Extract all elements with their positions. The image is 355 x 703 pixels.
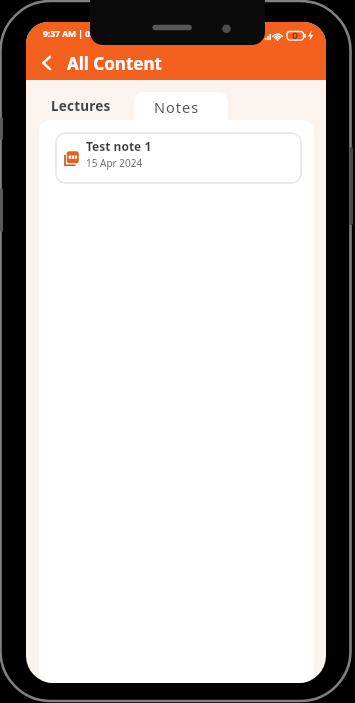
button[interactable]: Lectures: [51, 92, 111, 120]
staticText: 9:37 AM | 0.00KB/s: [43, 28, 122, 40]
staticText: Test note 1: [86, 138, 152, 154]
staticText: All Content: [67, 52, 162, 75]
staticText: Lectures: [51, 97, 111, 115]
button[interactable]: Test note 1: [55, 132, 302, 184]
button[interactable]: [32, 49, 60, 77]
staticText: 15 Apr 2024: [86, 156, 143, 170]
button[interactable]: Notes: [134, 92, 228, 121]
staticText: Notes: [154, 97, 200, 117]
